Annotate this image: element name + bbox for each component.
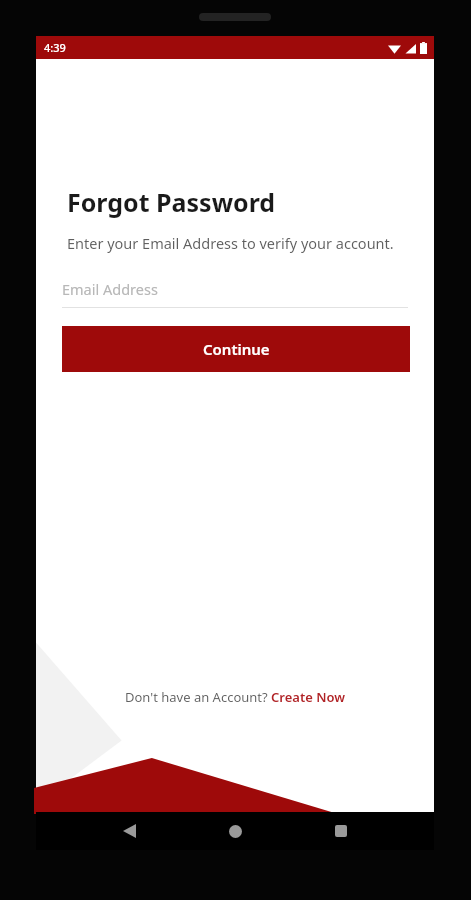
staticText: Don't have an Account? Create Now [125, 688, 346, 706]
staticText: 4:39 [44, 40, 66, 55]
staticText: Forgot Password [67, 185, 276, 219]
button[interactable]: Continue [62, 326, 410, 372]
button[interactable]: Recent apps [324, 814, 358, 848]
button[interactable]: Don't have an Account? Create Now [115, 682, 356, 712]
button[interactable]: Email Address [62, 279, 408, 308]
staticText: Enter your Email Address to verify your … [67, 233, 394, 253]
staticText: Continue [203, 339, 270, 359]
button[interactable]: Home [218, 814, 252, 848]
button[interactable]: Back [112, 814, 146, 848]
staticText: Email Address [62, 279, 158, 299]
